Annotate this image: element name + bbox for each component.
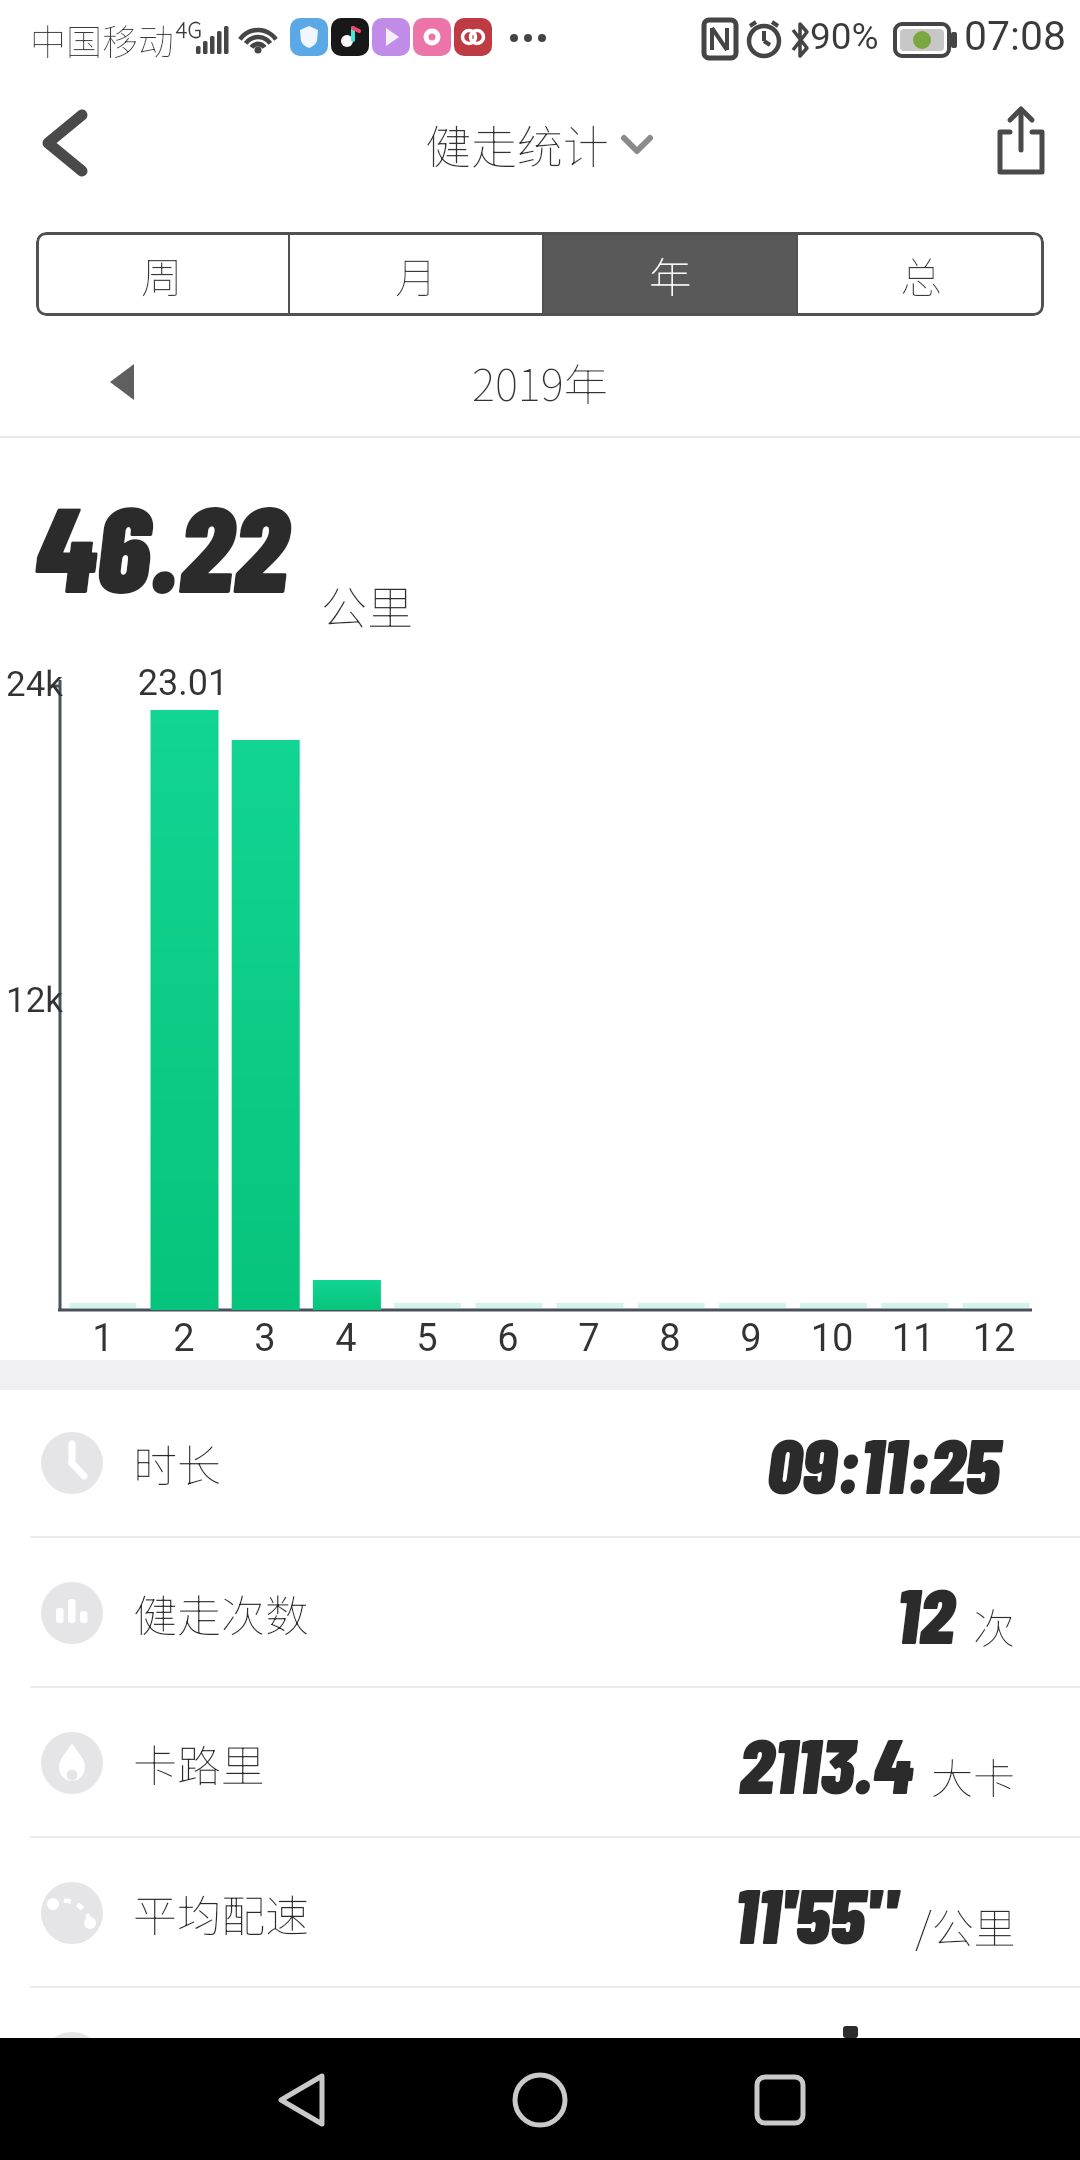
button[interactable]: 卡路里 xyxy=(0,1690,1080,1836)
staticText: 总 xyxy=(900,244,943,305)
staticText: 卡路里 xyxy=(133,1731,265,1795)
staticText: 平均配速 xyxy=(133,1881,309,1945)
staticText: 中国移动 xyxy=(30,13,175,65)
staticText: 7 xyxy=(549,1316,629,1361)
staticText: 周 xyxy=(141,244,184,305)
button[interactable] xyxy=(20,105,96,181)
staticText: 8 xyxy=(630,1316,710,1361)
staticText: 9 xyxy=(711,1316,791,1361)
staticText: 时长 xyxy=(133,1431,221,1495)
staticText: 次 xyxy=(973,1595,1016,1656)
staticText: 大卡 xyxy=(931,1745,1016,1806)
button[interactable]: 平均配速 xyxy=(0,1840,1080,1986)
staticText: 24k xyxy=(6,664,64,705)
staticText: 5.02 xyxy=(693,2016,813,2110)
staticText: 46.22 xyxy=(34,472,288,617)
staticText: /公里 xyxy=(915,1895,1016,1956)
button[interactable]: 健走次数 xyxy=(0,1540,1080,1686)
staticText: 健走次数 xyxy=(133,1581,309,1645)
button[interactable]: 健走统计 xyxy=(425,111,655,178)
button[interactable]: 时长 xyxy=(0,1390,1080,1536)
staticText: 年 xyxy=(649,244,692,305)
staticText: 月 xyxy=(395,244,438,305)
staticText: 4G xyxy=(176,12,203,44)
button[interactable] xyxy=(500,2060,580,2138)
button[interactable]: 平均速度 xyxy=(0,1990,1080,2136)
button[interactable]: 周 xyxy=(36,232,288,316)
staticText: 23.01 xyxy=(122,662,244,704)
staticText: 11'55" xyxy=(734,1866,897,1960)
staticText: 5 xyxy=(387,1316,467,1361)
staticText: 2 xyxy=(144,1316,224,1361)
button[interactable] xyxy=(740,2060,820,2138)
button[interactable]: 月 xyxy=(290,232,542,316)
staticText: 12k xyxy=(6,980,64,1021)
staticText: 健走统计 xyxy=(425,111,609,178)
button[interactable] xyxy=(984,102,1060,182)
staticText: 公里 xyxy=(321,572,413,639)
staticText: 3 xyxy=(225,1316,305,1361)
staticText: 平均速度 xyxy=(133,2031,309,2095)
button[interactable] xyxy=(260,2060,340,2138)
staticText: 12 xyxy=(954,1316,1034,1361)
staticText: 2019年 xyxy=(472,350,608,414)
button[interactable] xyxy=(90,350,154,414)
staticText: 07:08 xyxy=(964,12,1067,60)
staticText: 2113.4 xyxy=(739,1716,913,1810)
staticText: 10 xyxy=(792,1316,872,1361)
staticText: 12 xyxy=(896,1566,955,1660)
button[interactable]: 总 xyxy=(798,232,1044,316)
staticText: 11 xyxy=(873,1316,953,1361)
staticText: 09:11:25 xyxy=(767,1416,1000,1510)
button[interactable]: 年 xyxy=(544,232,796,316)
staticText: 4 xyxy=(306,1316,386,1361)
staticText: 6 xyxy=(468,1316,548,1361)
staticText: 90% xyxy=(810,15,879,58)
staticText: 1 xyxy=(63,1316,143,1361)
